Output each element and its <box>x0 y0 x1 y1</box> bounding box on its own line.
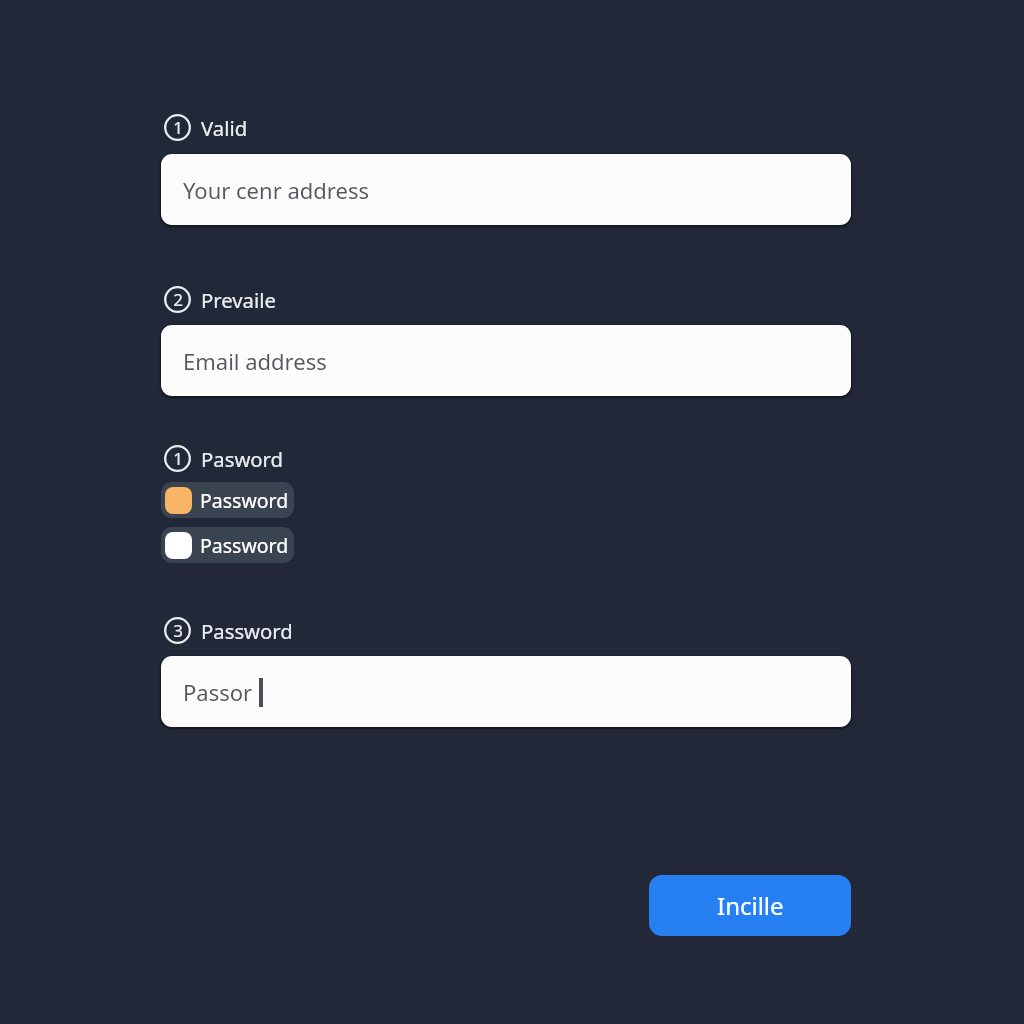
staticText: Prevaile <box>201 286 276 313</box>
staticText: Valid <box>201 114 248 141</box>
staticText: 2 <box>173 288 183 311</box>
button[interactable]: Email address <box>161 325 851 396</box>
button[interactable]: Password colour white <box>161 527 294 563</box>
button[interactable]: Password colour orange <box>161 482 294 518</box>
staticText: Passor <box>183 677 253 707</box>
staticText: 1 <box>173 116 183 139</box>
staticText: Incille <box>717 889 784 922</box>
staticText: 3 <box>173 619 183 642</box>
button[interactable]: Passor <box>161 656 851 727</box>
staticText: Your cenr address <box>183 175 369 205</box>
button[interactable]: Incille <box>649 875 851 936</box>
staticText: 1 <box>173 447 183 470</box>
button[interactable]: Your cenr address <box>161 154 851 225</box>
staticText: Password <box>201 617 293 644</box>
staticText: Email address <box>183 346 327 376</box>
staticText: Password <box>200 532 289 559</box>
staticText: Password <box>200 487 289 514</box>
staticText: Pasword <box>201 445 284 472</box>
